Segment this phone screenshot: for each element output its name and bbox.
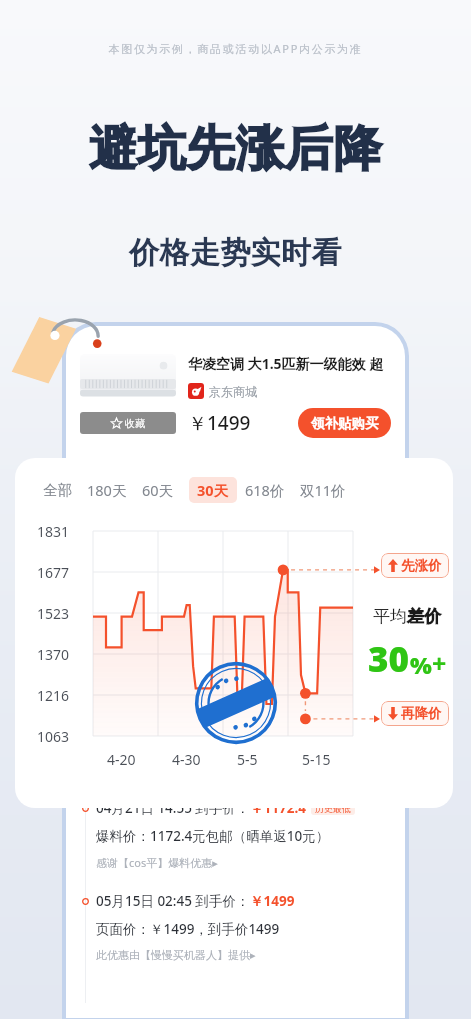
staticText: 双11价 <box>300 480 346 500</box>
staticText: 再降价 <box>401 705 442 722</box>
staticText: 30天 <box>197 480 229 500</box>
staticText: 爆料价：1172.4元包邮（晒单返10元） <box>96 827 330 845</box>
staticText: 1831 <box>37 522 70 541</box>
staticText: 1063 <box>37 727 70 746</box>
staticText: % <box>410 649 432 680</box>
staticText: 本图仅为示例，商品或活动以APP内公示为准 <box>0 41 471 56</box>
staticText: 此优惠由【慢慢买机器人】提供▸ <box>96 948 256 962</box>
staticText: 05月15日 02:45 到手价： <box>96 892 250 910</box>
button[interactable]: 历史优惠 <box>82 758 150 786</box>
staticText: 京东商城 <box>209 384 257 399</box>
staticText: 感谢【cos平】爆料优惠▸ <box>96 855 218 870</box>
staticText: 1216 <box>37 686 70 705</box>
staticText: ￥1499 <box>250 892 295 910</box>
button[interactable]: 全部 <box>43 478 72 502</box>
staticText: 04月21日 14:55 到手价： <box>96 799 250 817</box>
button[interactable]: 收藏 <box>80 412 176 434</box>
button[interactable]: 双11价 <box>300 477 346 503</box>
button[interactable]: 我要爆料 <box>326 763 389 779</box>
other: 价格标签 <box>8 314 100 388</box>
button[interactable]: 60天 <box>142 477 174 503</box>
staticText: 30 <box>368 635 410 683</box>
staticText: 1370 <box>37 645 70 664</box>
staticText: 4-20 <box>107 750 136 769</box>
staticText: 5-5 <box>237 750 258 769</box>
staticText: 差价 <box>407 606 441 627</box>
staticText: 页面价：￥1499，到手价1499 <box>96 920 280 938</box>
button[interactable]: 618价 <box>245 477 285 503</box>
staticText: 1523 <box>37 604 70 623</box>
staticText: 60天 <box>142 480 174 500</box>
button[interactable]: 04月21日 14:55 到手价： <box>82 799 389 870</box>
button[interactable]: 先涨价 <box>381 553 449 578</box>
button[interactable]: 30天 <box>189 477 237 503</box>
staticText: 平均 <box>373 606 407 627</box>
staticText: + <box>432 646 447 680</box>
staticText: 4-30 <box>172 750 201 769</box>
staticText: ￥1499 <box>188 410 251 436</box>
staticText: 180天 <box>87 480 127 500</box>
staticText: ￥1172.4 <box>250 799 306 817</box>
button[interactable]: 再降价 <box>381 701 449 726</box>
staticText: 历史最低 <box>315 803 351 814</box>
staticText: 5-15 <box>302 750 331 769</box>
staticText: 先涨价 <box>401 557 442 574</box>
staticText: 历史优惠 <box>82 758 150 779</box>
staticText: 618价 <box>245 480 285 500</box>
button[interactable]: 慢友到手价 <box>166 760 241 779</box>
button[interactable]: 05月15日 02:45 到手价： <box>82 892 389 962</box>
staticText: 全部 <box>43 481 72 499</box>
staticText: 领补贴购买 <box>311 415 379 432</box>
button[interactable]: 180天 <box>87 477 127 503</box>
staticText: 收藏 <box>125 417 145 430</box>
other: 商家套路印章 <box>187 654 285 752</box>
staticText: 避坑先涨后降 <box>0 119 471 179</box>
button[interactable]: 领补贴购买 <box>298 408 391 438</box>
staticText: 华凌空调 大1.5匹新一级能效 超省电· <box>188 354 391 373</box>
staticText: 我要爆料 <box>326 763 376 779</box>
staticText: 1677 <box>37 563 70 582</box>
staticText: 价格走势实时看 <box>0 234 471 272</box>
